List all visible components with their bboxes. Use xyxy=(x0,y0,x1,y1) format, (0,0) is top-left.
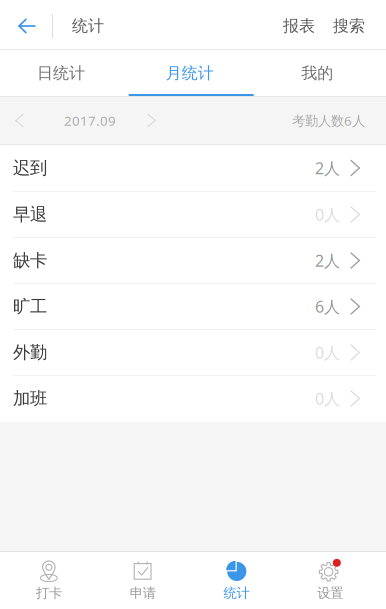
staticText: 申请 xyxy=(130,585,156,601)
button[interactable]: 返回 xyxy=(0,0,52,49)
button[interactable]: 月统计 xyxy=(129,50,257,96)
staticText: 2人 xyxy=(315,157,340,179)
button[interactable]: 打卡 xyxy=(2,552,96,609)
button[interactable]: 日统计 xyxy=(0,50,129,96)
button[interactable]: 搜索 xyxy=(324,0,386,49)
staticText: 月统计 xyxy=(166,63,214,83)
staticText: 日统计 xyxy=(37,63,85,83)
staticText: 早退 xyxy=(13,204,47,225)
staticText: 迟到 xyxy=(13,157,47,179)
button[interactable]: 设置 xyxy=(283,552,377,609)
button[interactable]: 我的 xyxy=(257,50,386,96)
staticText: 加班 xyxy=(13,388,47,409)
staticText: 考勤人数6人 xyxy=(292,112,365,129)
button[interactable]: 迟到 xyxy=(0,145,386,192)
staticText: 6人 xyxy=(315,296,340,317)
button[interactable]: 外勤 xyxy=(0,330,386,376)
staticText: 外勤 xyxy=(13,342,47,363)
staticText: 报表 xyxy=(283,16,315,36)
staticText: 0人 xyxy=(315,342,340,363)
button[interactable]: 早退 xyxy=(0,192,386,238)
staticText: 设置 xyxy=(317,585,343,601)
button[interactable]: 报表 xyxy=(274,0,324,49)
button[interactable]: 缺卡 xyxy=(0,238,386,284)
staticText: 我的 xyxy=(301,63,333,83)
button[interactable]: 统计 xyxy=(189,552,283,609)
staticText: 搜索 xyxy=(333,16,365,36)
staticText: 旷工 xyxy=(13,296,47,317)
staticText: 统计 xyxy=(223,585,249,601)
button[interactable]: 申请 xyxy=(96,552,190,609)
staticText: 2人 xyxy=(315,250,340,271)
staticText: 0人 xyxy=(315,388,340,409)
staticText: 统计 xyxy=(72,16,104,36)
staticText: 0人 xyxy=(315,204,340,225)
staticText: 2017.09 xyxy=(64,112,116,129)
button[interactable]: 加班 xyxy=(0,376,386,422)
button[interactable]: 旷工 xyxy=(0,284,386,330)
staticText: 打卡 xyxy=(36,585,62,601)
staticText: 缺卡 xyxy=(13,250,47,271)
